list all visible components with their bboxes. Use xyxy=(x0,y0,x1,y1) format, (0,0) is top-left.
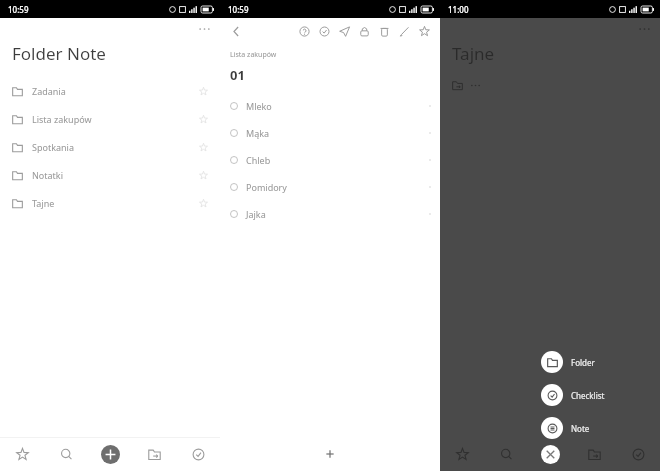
staticText: Note xyxy=(571,423,590,434)
button[interactable]: Lock xyxy=(354,21,374,41)
button[interactable]: Folders xyxy=(132,437,176,471)
button[interactable]: Add item xyxy=(317,441,343,467)
button[interactable]: Delete xyxy=(374,21,394,41)
staticText: Lista zakupów xyxy=(230,50,277,60)
button[interactable]: Add xyxy=(88,437,132,471)
staticText: Folder Note xyxy=(12,42,106,65)
staticText: Tajne xyxy=(32,197,55,209)
button[interactable]: Spotkania xyxy=(0,133,220,161)
staticText: Chleb xyxy=(246,154,271,166)
staticText: Folder xyxy=(571,357,595,368)
staticText: Lista zakupów xyxy=(32,113,92,125)
button[interactable]: Note xyxy=(541,417,590,439)
staticText: Notatki xyxy=(32,169,63,181)
staticText: Spotkania xyxy=(32,141,74,153)
staticText: 10:59 xyxy=(228,4,249,15)
button[interactable]: Search xyxy=(484,437,528,471)
button[interactable]: Edit xyxy=(394,21,414,41)
staticText: Mąka xyxy=(246,127,270,139)
button[interactable]: Zadania xyxy=(0,77,220,105)
staticText: 11:00 xyxy=(448,4,469,15)
button[interactable]: Jajka xyxy=(220,200,440,227)
button[interactable]: Checklists xyxy=(616,437,660,471)
staticText: Tajne xyxy=(452,42,495,65)
button[interactable]: Folders xyxy=(572,437,616,471)
button[interactable]: Notatki xyxy=(0,161,220,189)
button[interactable]: Tajne xyxy=(0,189,220,217)
button[interactable]: Mleko xyxy=(220,92,440,119)
button[interactable]: Pomidory xyxy=(220,173,440,200)
button[interactable]: More options xyxy=(194,19,214,39)
staticText: 10:59 xyxy=(8,4,29,15)
button[interactable]: Chleb xyxy=(220,146,440,173)
button[interactable]: Search xyxy=(44,437,88,471)
button[interactable]: Back xyxy=(228,23,244,39)
staticText: Mleko xyxy=(246,100,272,112)
staticText: Pomidory xyxy=(246,181,287,193)
button[interactable]: Checklists xyxy=(176,437,220,471)
staticText: Jajka xyxy=(246,208,266,220)
button[interactable]: Favorites xyxy=(440,437,484,471)
button[interactable]: Lista zakupów xyxy=(0,105,220,133)
button[interactable]: Done xyxy=(314,21,334,41)
button[interactable]: Help xyxy=(294,21,314,41)
staticText: Checklist xyxy=(571,390,605,401)
staticText: Zadania xyxy=(32,85,66,97)
button[interactable]: Mąka xyxy=(220,119,440,146)
button[interactable]: Close xyxy=(528,437,572,471)
button[interactable]: Folder xyxy=(541,351,595,373)
button[interactable]: Checklist xyxy=(541,384,605,406)
button[interactable]: Favorites xyxy=(0,437,44,471)
button[interactable]: Favorite xyxy=(414,21,434,41)
staticText: 01 xyxy=(230,66,245,84)
button[interactable]: Send xyxy=(334,21,354,41)
